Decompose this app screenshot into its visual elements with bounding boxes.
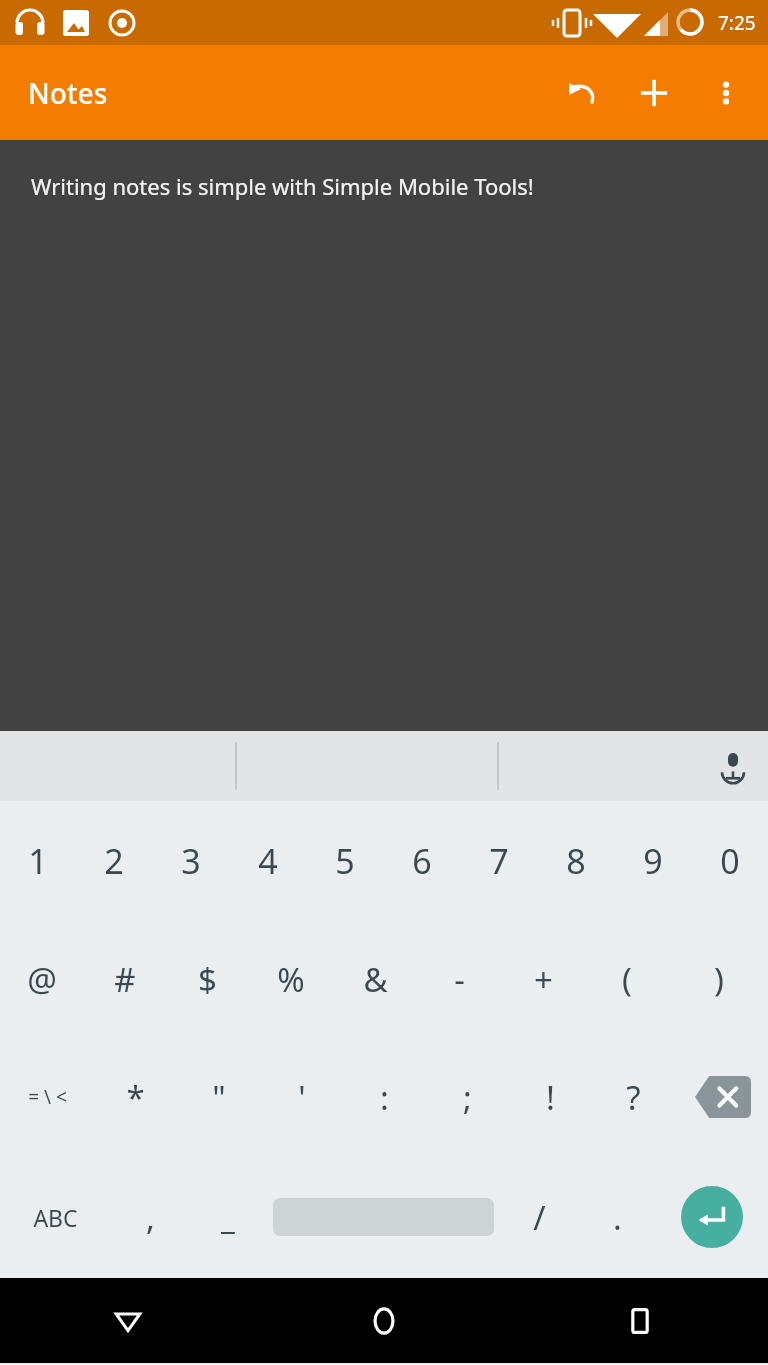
staticText: + bbox=[534, 957, 553, 1002]
button[interactable]: + bbox=[501, 920, 585, 1038]
button[interactable]: " bbox=[177, 1038, 260, 1156]
button[interactable]: Enter bbox=[656, 1156, 768, 1278]
button[interactable]: = \ < bbox=[0, 1038, 94, 1156]
staticText: ' bbox=[298, 1075, 306, 1120]
button[interactable]: , bbox=[111, 1156, 189, 1278]
staticText: Notes bbox=[28, 74, 108, 112]
staticText: 1 bbox=[28, 838, 48, 884]
button[interactable]: Recent apps bbox=[512, 1278, 768, 1363]
button[interactable]: * bbox=[94, 1038, 177, 1156]
button[interactable]: ' bbox=[260, 1038, 343, 1156]
staticText: , bbox=[146, 1195, 155, 1240]
button[interactable]: & bbox=[333, 920, 417, 1038]
staticText: $ bbox=[198, 957, 217, 1002]
button[interactable]: ABC bbox=[0, 1156, 111, 1278]
button[interactable]: Backspace bbox=[675, 1038, 768, 1156]
staticText: ! bbox=[546, 1075, 555, 1120]
staticText: _ bbox=[221, 1196, 235, 1238]
button[interactable]: 7 bbox=[460, 801, 537, 920]
staticText: & bbox=[363, 957, 388, 1002]
staticText: @ bbox=[27, 957, 57, 1002]
button[interactable]: . bbox=[578, 1156, 656, 1278]
button[interactable]: Space bbox=[267, 1156, 500, 1278]
staticText: % bbox=[277, 957, 305, 1002]
button[interactable]: Home bbox=[256, 1278, 512, 1363]
button[interactable]: - bbox=[417, 920, 501, 1038]
button[interactable]: @ bbox=[0, 920, 83, 1038]
button[interactable]: $ bbox=[166, 920, 249, 1038]
button[interactable]: ; bbox=[426, 1038, 509, 1156]
button[interactable]: Voice input bbox=[698, 731, 768, 801]
staticText: / bbox=[533, 1195, 546, 1240]
staticText: 5 bbox=[335, 838, 355, 884]
staticText: 4 bbox=[258, 838, 278, 884]
button[interactable]: More options bbox=[690, 57, 762, 129]
button[interactable]: Add note bbox=[618, 57, 690, 129]
staticText: . bbox=[613, 1195, 622, 1240]
button[interactable]: 0 bbox=[691, 801, 768, 920]
staticText: " bbox=[212, 1075, 226, 1120]
button[interactable]: 3 bbox=[152, 801, 229, 920]
staticText: 9 bbox=[643, 838, 663, 884]
button[interactable]: 4 bbox=[229, 801, 306, 920]
staticText: 3 bbox=[181, 838, 201, 884]
staticText: Writing notes is simple with Simple Mobi… bbox=[31, 171, 534, 201]
staticText: ( bbox=[622, 957, 632, 1002]
staticText: # bbox=[114, 957, 136, 1002]
button[interactable]: ! bbox=[509, 1038, 592, 1156]
staticText: ? bbox=[626, 1075, 641, 1120]
button[interactable]: 8 bbox=[537, 801, 614, 920]
staticText: 6 bbox=[412, 838, 432, 884]
staticText: - bbox=[454, 957, 465, 1002]
button[interactable]: ? bbox=[592, 1038, 675, 1156]
button[interactable]: ( bbox=[585, 920, 669, 1038]
button[interactable]: 2 bbox=[76, 801, 152, 920]
staticText: 7:25 bbox=[718, 10, 756, 36]
button[interactable]: # bbox=[83, 920, 166, 1038]
button[interactable]: ) bbox=[669, 920, 768, 1038]
button[interactable]: 1 bbox=[0, 801, 76, 920]
button[interactable]: 9 bbox=[614, 801, 691, 920]
button[interactable]: % bbox=[249, 920, 333, 1038]
staticText: 8 bbox=[566, 838, 586, 884]
button[interactable]: Back bbox=[0, 1278, 256, 1363]
staticText: * bbox=[126, 1075, 145, 1120]
button[interactable]: 5 bbox=[306, 801, 383, 920]
staticText: 2 bbox=[104, 838, 124, 884]
staticText: ) bbox=[714, 957, 724, 1002]
staticText: ; bbox=[463, 1075, 472, 1120]
staticText: 7 bbox=[489, 838, 509, 884]
button[interactable]: : bbox=[343, 1038, 426, 1156]
button[interactable]: Writing notes is simple with Simple Mobi… bbox=[0, 140, 768, 731]
button[interactable]: _ bbox=[189, 1156, 267, 1278]
staticText: = \ < bbox=[28, 1084, 67, 1110]
staticText: ABC bbox=[33, 1202, 78, 1233]
button[interactable]: 6 bbox=[383, 801, 460, 920]
button[interactable]: Undo bbox=[546, 57, 618, 129]
button[interactable]: / bbox=[500, 1156, 578, 1278]
staticText: 0 bbox=[720, 838, 740, 884]
staticText: : bbox=[380, 1075, 389, 1120]
